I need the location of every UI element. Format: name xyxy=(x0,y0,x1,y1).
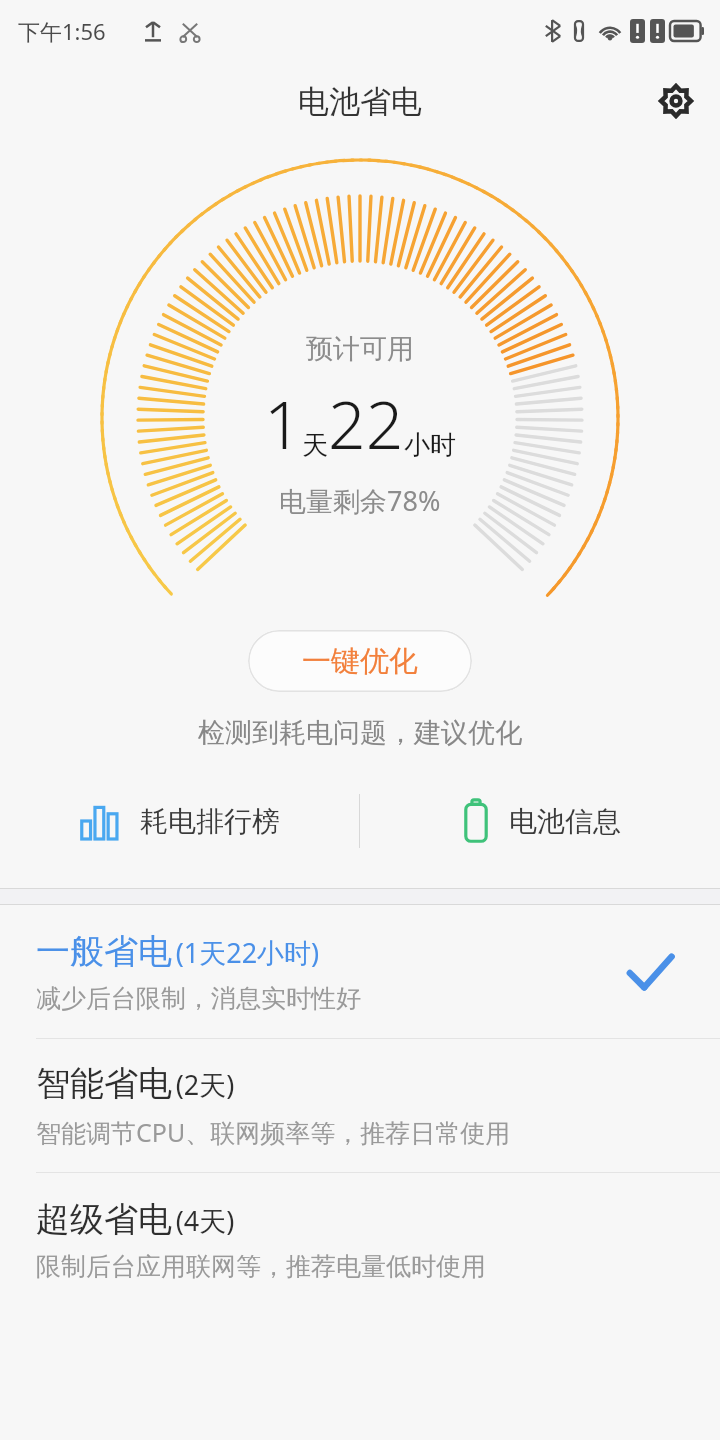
staticText: 电量剩余78% xyxy=(279,482,441,519)
button[interactable]: 智能省电 (2天) xyxy=(0,1039,720,1172)
staticText: 下午1:56 xyxy=(18,16,106,46)
button[interactable]: 耗电排行榜 xyxy=(0,778,359,864)
button[interactable]: 电池信息 xyxy=(360,778,720,864)
staticText: 减少后台限制，消息实时性好 xyxy=(36,983,361,1014)
staticText: 耗电排行榜 xyxy=(140,804,280,839)
button[interactable]: Settings xyxy=(652,77,700,125)
staticText: 一般省电 (1天22小时) xyxy=(36,930,320,973)
button[interactable]: 一键优化 xyxy=(248,630,472,692)
staticText: 超级省电 (4天) xyxy=(36,1198,235,1241)
staticText: 天 xyxy=(302,429,328,462)
staticText: 智能省电 (2天) xyxy=(36,1062,235,1105)
staticText: 限制后台应用联网等，推荐电量低时使用 xyxy=(36,1251,486,1282)
staticText: 检测到耗电问题，建议优化 xyxy=(198,716,522,750)
button[interactable]: 超级省电 (4天) xyxy=(0,1173,720,1306)
button[interactable]: 一般省电 (1天22小时) xyxy=(0,905,720,1038)
staticText: 1 xyxy=(264,378,302,468)
staticText: 22 xyxy=(328,378,404,468)
staticText: 预计可用 xyxy=(306,332,414,366)
staticText: 智能调节CPU、联网频率等，推荐日常使用 xyxy=(36,1115,511,1149)
staticText: 小时 xyxy=(404,429,456,462)
staticText: 电池省电 xyxy=(298,82,422,121)
staticText: 电池信息 xyxy=(509,804,621,839)
staticText: 一键优化 xyxy=(302,643,418,680)
